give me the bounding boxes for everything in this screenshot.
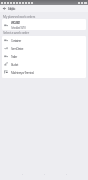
button[interactable]: Bucket: [2, 60, 86, 68]
button[interactable]: Semi Device: [2, 44, 86, 52]
staticText: Select a work order: [3, 30, 29, 35]
staticText: Trailer: [11, 55, 17, 59]
button[interactable]: Back: [2, 6, 7, 11]
staticText: Machinery or Terminal: [11, 71, 34, 75]
staticText: WO-3921: [11, 21, 20, 25]
staticText: Semi Device: [11, 47, 24, 51]
staticText: Container: [11, 39, 21, 43]
button[interactable]: Machinery or Terminal: [2, 68, 86, 76]
button[interactable]: Trailer: [2, 52, 86, 60]
staticText: Edit Job: [8, 7, 15, 11]
staticText: My planned work orders: [3, 15, 36, 19]
staticText: Scheduled 10/18: [11, 26, 26, 30]
staticText: Bucket: [11, 63, 18, 67]
button[interactable]: Container: [2, 36, 86, 44]
